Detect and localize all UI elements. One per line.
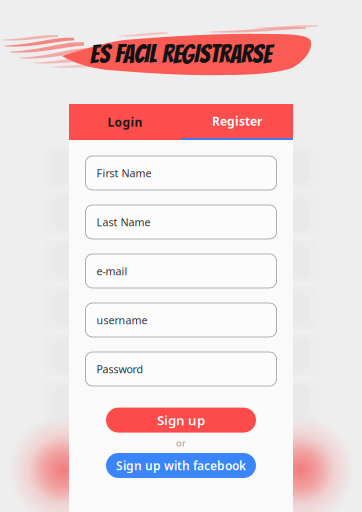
- staticText: Password: [96, 362, 143, 376]
- staticText: ES FACIL REGISTRARSE: [90, 40, 272, 67]
- staticText: Sign up with facebook: [116, 457, 246, 473]
- button[interactable]: Sign up: [106, 408, 256, 433]
- staticText: Login: [107, 114, 142, 130]
- staticText: Last Name: [96, 215, 150, 229]
- button[interactable]: Register: [181, 104, 293, 140]
- staticText: Sign up: [157, 411, 205, 429]
- button[interactable]: Login: [69, 104, 181, 140]
- staticText: Register: [212, 113, 262, 129]
- staticText: or: [176, 437, 186, 449]
- staticText: e-mail: [96, 264, 127, 278]
- button[interactable]: Sign up with facebook: [106, 453, 256, 478]
- staticText: username: [96, 313, 147, 327]
- staticText: First Name: [96, 166, 151, 180]
